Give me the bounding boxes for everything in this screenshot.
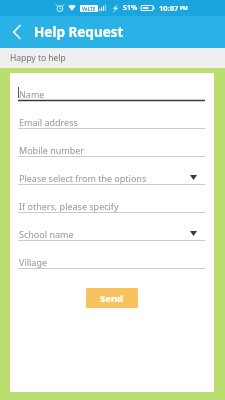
staticText: PM (180, 5, 188, 12)
staticText: Please select from the options (19, 172, 147, 184)
staticText: Help Request (34, 23, 124, 41)
staticText: Name (19, 88, 45, 100)
button[interactable]: Please select from the options (18, 171, 205, 199)
staticText: School name (19, 228, 74, 240)
button[interactable]: Village (18, 255, 205, 283)
staticText: Village (19, 256, 48, 268)
staticText: VoLTE (82, 6, 96, 12)
button[interactable]: Name (18, 87, 205, 115)
staticText: 10:07 (159, 3, 179, 13)
button[interactable]: Email address (18, 115, 205, 143)
button[interactable]: Mobile number (18, 143, 205, 171)
staticText: Mobile number (19, 144, 85, 156)
staticText: Happy to help (10, 52, 66, 64)
staticText: Send (100, 292, 124, 305)
staticText: If others, please specify (19, 200, 119, 212)
button[interactable]: Send (86, 288, 138, 308)
button[interactable]: School name (18, 227, 205, 255)
button[interactable]: If others, please specify (18, 199, 205, 227)
button[interactable]: Back (0, 16, 34, 48)
staticText: Email address (19, 116, 78, 128)
staticText: 51% (123, 3, 138, 13)
